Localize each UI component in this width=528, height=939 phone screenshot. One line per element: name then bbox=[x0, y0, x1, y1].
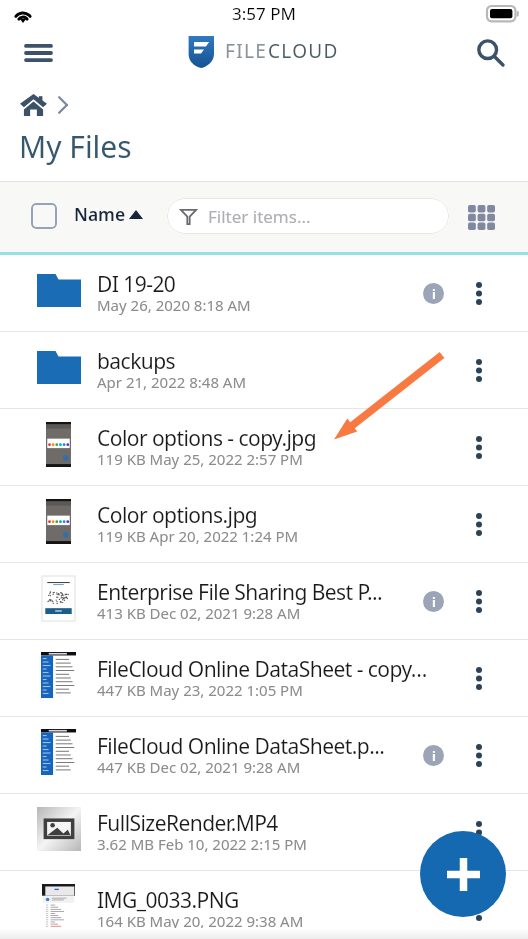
button[interactable]: More options bbox=[462, 507, 496, 541]
button[interactable]: Color options - copy.jpg bbox=[0, 409, 528, 485]
button[interactable]: More options bbox=[462, 276, 496, 310]
staticText: 3.62 MB Feb 10, 2022 2:15 PM bbox=[97, 834, 307, 854]
button[interactable]: FullSizeRender.MP4 bbox=[0, 794, 528, 870]
staticText: Color options.jpg bbox=[97, 501, 258, 530]
staticText: FileCloud Online DataSheet.p... bbox=[97, 732, 385, 761]
button[interactable]: backups bbox=[0, 332, 528, 408]
button[interactable]: More options bbox=[462, 738, 496, 772]
staticText: Apr 21, 2022 8:48 AM bbox=[97, 372, 247, 392]
staticText: 119 KB May 25, 2022 2:57 PM bbox=[97, 449, 303, 469]
staticText: FullSizeRender.MP4 bbox=[97, 809, 278, 838]
button[interactable]: Name bbox=[68, 194, 150, 240]
staticText: CLOUD bbox=[268, 38, 339, 64]
staticText: DI 19-20 bbox=[97, 270, 176, 299]
button[interactable]: More options bbox=[462, 353, 496, 387]
button[interactable]: IMG_0033.PNG bbox=[0, 871, 528, 939]
staticText: My Files bbox=[19, 126, 132, 167]
staticText: Name bbox=[74, 202, 126, 226]
staticText: 447 KB May 23, 2022 1:05 PM bbox=[97, 680, 303, 700]
button[interactable]: More options bbox=[462, 815, 496, 849]
button[interactable]: FileCloud Online DataSheet - copy… bbox=[0, 640, 528, 716]
staticText: FILE bbox=[225, 38, 268, 64]
button[interactable]: More options bbox=[462, 430, 496, 464]
staticText: IMG_0033.PNG bbox=[97, 886, 239, 915]
staticText: May 26, 2020 8:18 AM bbox=[97, 295, 251, 315]
button[interactable]: Info bbox=[423, 745, 444, 766]
staticText: i bbox=[432, 747, 436, 765]
staticText: 413 KB Dec 02, 2021 9:28 AM bbox=[97, 603, 301, 623]
staticText: 447 KB Dec 02, 2021 9:28 AM bbox=[97, 757, 301, 777]
button[interactable]: Color options.jpg bbox=[0, 486, 528, 562]
button[interactable]: Grid view bbox=[461, 197, 501, 237]
staticText: backups bbox=[97, 347, 176, 376]
staticText: i bbox=[432, 593, 436, 611]
button[interactable]: Home bbox=[20, 94, 47, 116]
button[interactable]: Info bbox=[423, 591, 444, 612]
button[interactable]: Enterprise File Sharing Best P... bbox=[0, 563, 528, 639]
staticText: Color options - copy.jpg bbox=[97, 424, 317, 453]
button[interactable]: More options bbox=[462, 584, 496, 618]
button[interactable]: Info bbox=[423, 283, 444, 304]
button[interactable]: Search bbox=[468, 30, 514, 76]
button[interactable]: Menu bbox=[13, 28, 63, 78]
button[interactable]: More options bbox=[462, 661, 496, 695]
button[interactable]: Select all bbox=[31, 203, 57, 229]
staticText: i bbox=[432, 285, 436, 303]
button[interactable]: More options bbox=[462, 892, 496, 926]
staticText: FileCloud Online DataSheet - copy… bbox=[97, 655, 427, 684]
staticText: Filter items... bbox=[208, 205, 311, 228]
staticText: Enterprise File Sharing Best P... bbox=[97, 578, 383, 607]
staticText: 164 KB May 20, 2022 9:38 AM bbox=[97, 911, 304, 931]
button[interactable]: DI 19-20 bbox=[0, 255, 528, 331]
button[interactable]: Add bbox=[420, 831, 506, 917]
staticText: 119 KB Apr 20, 2022 1:24 PM bbox=[97, 526, 299, 546]
button[interactable]: FileCloud Online DataSheet.p... bbox=[0, 717, 528, 793]
button[interactable]: Filter items... bbox=[167, 198, 449, 234]
staticText: 3:57 PM bbox=[232, 2, 296, 25]
